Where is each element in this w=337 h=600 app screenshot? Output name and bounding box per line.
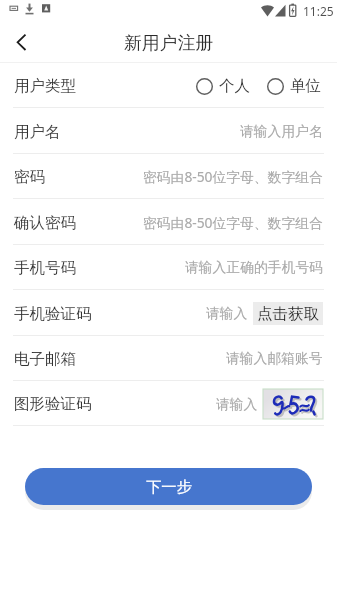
button[interactable]: 点击获取 — [253, 302, 323, 325]
staticText: 请输入正确的手机号码 — [185, 259, 323, 276]
staticText: 新用户注册 — [124, 32, 213, 54]
staticText: 密码 — [14, 167, 45, 187]
staticText: 请输入 — [206, 305, 248, 322]
staticText: 请输入 — [216, 396, 258, 413]
staticText: 11:25 — [303, 3, 334, 19]
staticText: 点击获取 — [257, 304, 319, 324]
staticText: 单位 — [290, 76, 321, 96]
staticText: 手机验证码 — [14, 304, 92, 324]
staticText: 用户类型 — [14, 76, 76, 96]
staticText: 密码由8-50位字母、数字组合 — [143, 213, 323, 232]
button[interactable]: Back — [0, 22, 44, 61]
staticText: 请输入邮箱账号 — [226, 350, 323, 367]
staticText: 下一步 — [146, 477, 192, 496]
staticText: 电子邮箱 — [14, 349, 76, 369]
button[interactable]: Refresh captcha image — [263, 389, 323, 419]
staticText: 图形验证码 — [14, 394, 92, 414]
button[interactable]: 单位 — [267, 76, 321, 96]
staticText: 个人 — [219, 76, 250, 96]
button[interactable]: 个人 — [196, 76, 250, 96]
staticText: 确认密码 — [14, 213, 76, 233]
staticText: 手机号码 — [14, 258, 76, 278]
staticText: 密码由8-50位字母、数字组合 — [143, 167, 323, 186]
staticText: 用户名 — [14, 122, 61, 142]
button[interactable]: 下一步 — [25, 468, 312, 505]
staticText: 请输入用户名 — [240, 123, 323, 140]
